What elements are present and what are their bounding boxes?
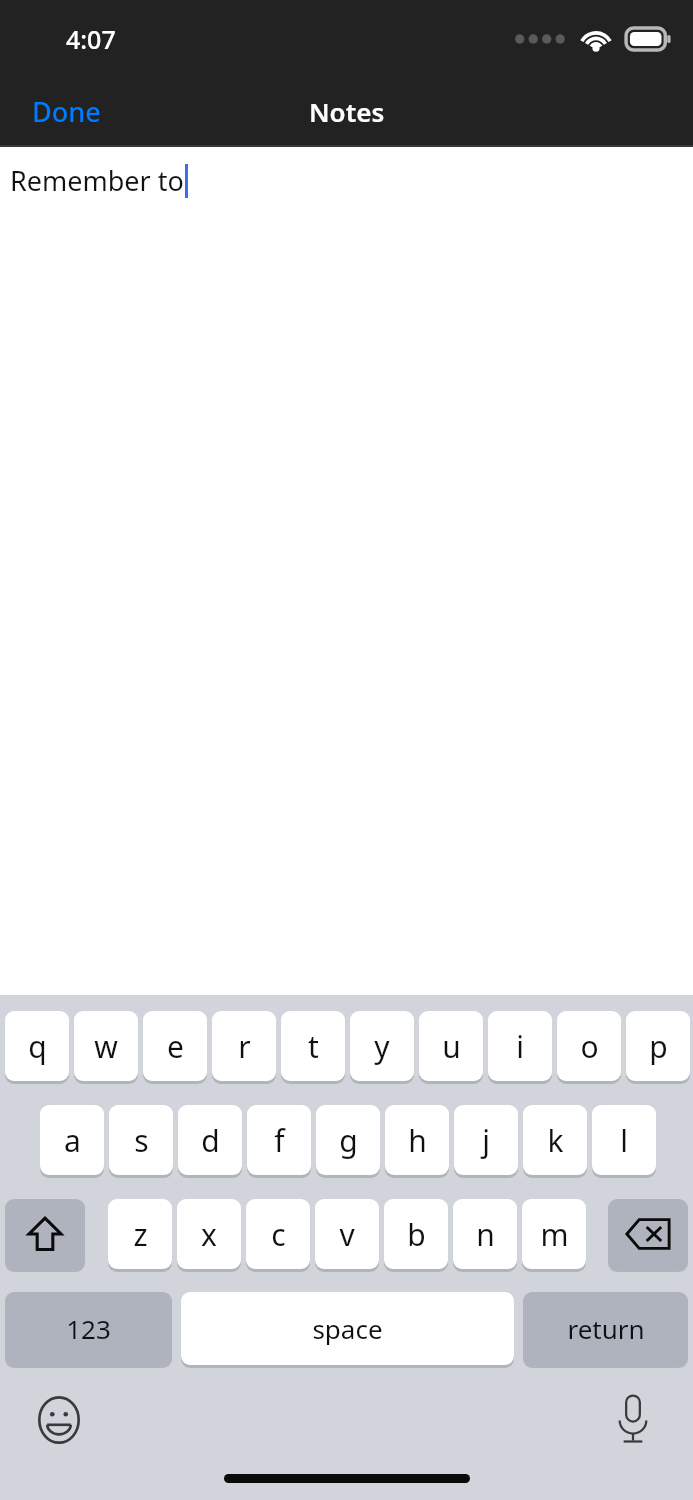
- staticText: 123: [66, 1311, 111, 1346]
- button[interactable]: v: [315, 1199, 379, 1269]
- staticText: Done: [32, 93, 101, 130]
- staticText: z: [133, 1214, 148, 1255]
- staticText: i: [516, 1026, 524, 1067]
- staticText: f: [274, 1120, 285, 1161]
- button[interactable]: u: [419, 1011, 483, 1081]
- staticText: n: [476, 1214, 495, 1255]
- staticText: v: [339, 1214, 355, 1255]
- button[interactable]: b: [384, 1199, 448, 1269]
- button[interactable]: i: [488, 1011, 552, 1081]
- staticText: d: [201, 1120, 220, 1161]
- button[interactable]: g: [316, 1105, 380, 1175]
- button[interactable]: d: [178, 1105, 242, 1175]
- staticText: t: [308, 1026, 319, 1067]
- button[interactable]: Remember to: [0, 147, 693, 995]
- button[interactable]: f: [247, 1105, 311, 1175]
- staticText: g: [339, 1120, 358, 1161]
- button[interactable]: e: [143, 1011, 207, 1081]
- staticText: 4:07: [66, 22, 116, 56]
- staticText: p: [649, 1026, 668, 1067]
- button[interactable]: Shift: [5, 1199, 85, 1269]
- button[interactable]: n: [453, 1199, 517, 1269]
- button[interactable]: l: [592, 1105, 656, 1175]
- button[interactable]: Done: [0, 81, 133, 142]
- button[interactable]: Dictation: [609, 1388, 657, 1450]
- staticText: u: [442, 1026, 461, 1067]
- button[interactable]: h: [385, 1105, 449, 1175]
- staticText: l: [620, 1120, 628, 1161]
- staticText: o: [580, 1026, 599, 1067]
- button[interactable]: return: [523, 1292, 688, 1365]
- staticText: j: [482, 1120, 490, 1161]
- button[interactable]: c: [246, 1199, 310, 1269]
- staticText: w: [94, 1026, 118, 1067]
- button[interactable]: o: [557, 1011, 621, 1081]
- button[interactable]: j: [454, 1105, 518, 1175]
- staticText: h: [408, 1120, 427, 1161]
- button[interactable]: x: [177, 1199, 241, 1269]
- staticText: e: [167, 1026, 184, 1067]
- staticText: Notes: [309, 94, 385, 129]
- staticText: y: [374, 1026, 390, 1067]
- staticText: x: [201, 1214, 217, 1255]
- staticText: Remember to: [10, 162, 184, 199]
- button[interactable]: space: [181, 1292, 514, 1365]
- button[interactable]: w: [74, 1011, 138, 1081]
- button[interactable]: p: [626, 1011, 690, 1081]
- button[interactable]: Emoji: [32, 1390, 86, 1450]
- button[interactable]: y: [350, 1011, 414, 1081]
- button[interactable]: r: [212, 1011, 276, 1081]
- staticText: m: [540, 1214, 569, 1255]
- button[interactable]: Backspace: [608, 1199, 688, 1269]
- button[interactable]: m: [522, 1199, 586, 1269]
- staticText: q: [28, 1026, 47, 1067]
- staticText: a: [64, 1120, 81, 1161]
- button[interactable]: q: [5, 1011, 69, 1081]
- staticText: s: [134, 1120, 149, 1161]
- button[interactable]: t: [281, 1011, 345, 1081]
- staticText: k: [547, 1120, 564, 1161]
- staticText: space: [312, 1311, 383, 1346]
- staticText: r: [238, 1026, 251, 1067]
- button[interactable]: s: [109, 1105, 173, 1175]
- button[interactable]: 123: [5, 1292, 172, 1365]
- button[interactable]: k: [523, 1105, 587, 1175]
- button[interactable]: z: [108, 1199, 172, 1269]
- staticText: return: [567, 1311, 645, 1346]
- button[interactable]: a: [40, 1105, 104, 1175]
- staticText: c: [271, 1214, 286, 1255]
- staticText: b: [407, 1214, 426, 1255]
